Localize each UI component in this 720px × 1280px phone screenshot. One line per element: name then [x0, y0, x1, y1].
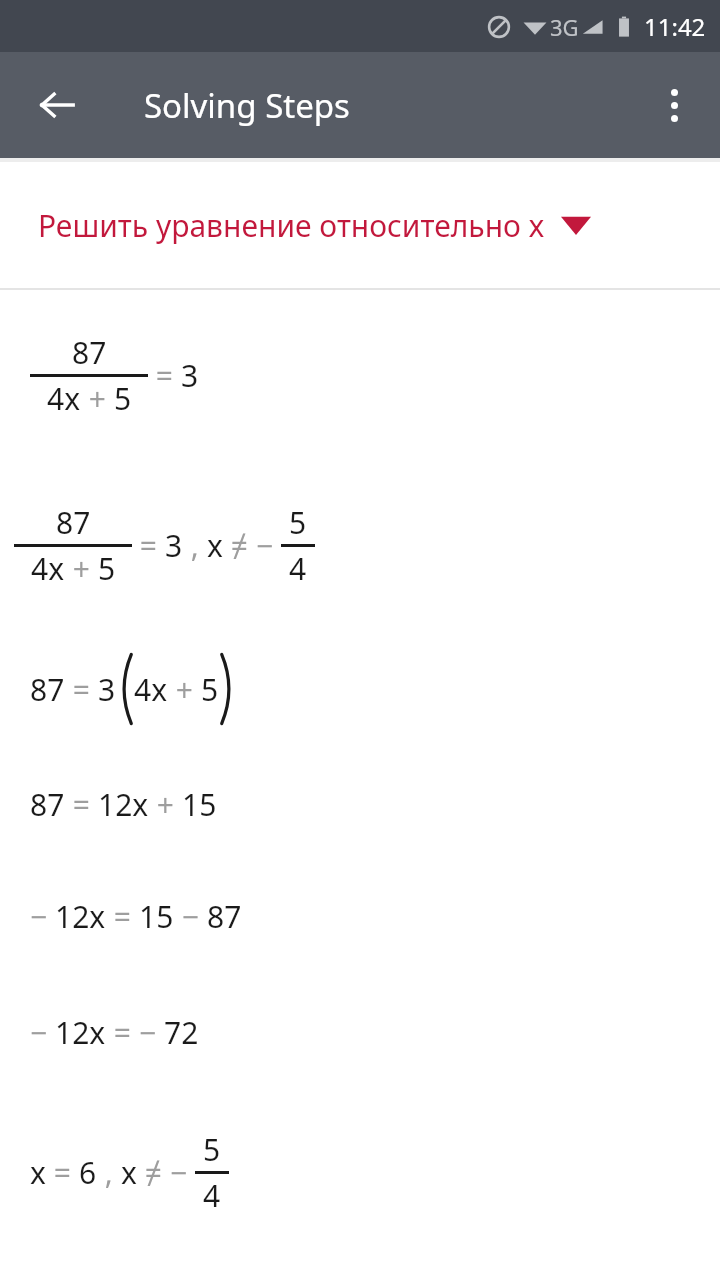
- staticText: =: [46, 1152, 79, 1193]
- staticText: Решить уравнение относительно х: [38, 205, 545, 246]
- staticText: 87: [72, 332, 107, 373]
- staticText: 87: [56, 502, 91, 543]
- button[interactable]: 87: [0, 748, 720, 860]
- staticText: 4x: [134, 669, 168, 710]
- staticText: =: [106, 1012, 139, 1053]
- button[interactable]: 87: [0, 290, 720, 460]
- staticText: 15: [139, 896, 174, 937]
- staticText: 6: [79, 1152, 97, 1193]
- staticText: −: [139, 1012, 164, 1053]
- staticText: 87: [30, 784, 65, 825]
- staticText: =: [148, 355, 181, 396]
- staticText: 5: [203, 1129, 221, 1170]
- staticText: 87: [30, 669, 65, 710]
- staticText: 4: [203, 1175, 221, 1216]
- staticText: x: [207, 525, 223, 566]
- staticText: =: [106, 896, 139, 937]
- button[interactable]: 87: [0, 630, 720, 748]
- staticText: −: [30, 1012, 55, 1053]
- staticText: 15: [182, 784, 217, 825]
- staticText: 3G: [550, 12, 579, 42]
- staticText: 12x: [55, 1012, 106, 1053]
- button[interactable]: Решить уравнение относительно х: [0, 162, 720, 288]
- staticText: ≠: [137, 1152, 170, 1193]
- staticText: ≠: [223, 525, 256, 566]
- staticText: 4: [289, 548, 307, 589]
- button[interactable]: x: [0, 1092, 720, 1252]
- staticText: 5: [114, 378, 132, 419]
- staticText: 3: [165, 525, 183, 566]
- staticText: =: [65, 669, 98, 710]
- staticText: =: [65, 784, 98, 825]
- staticText: 87: [207, 896, 242, 937]
- button[interactable]: −: [0, 860, 720, 972]
- staticText: 5: [289, 502, 307, 543]
- staticText: +: [168, 669, 201, 710]
- staticText: 72: [164, 1012, 199, 1053]
- staticText: Solving Steps: [144, 83, 350, 128]
- button[interactable]: 87: [0, 460, 720, 630]
- staticText: +: [81, 378, 114, 419]
- button[interactable]: −: [0, 972, 720, 1092]
- staticText: +: [65, 548, 98, 589]
- staticText: −: [256, 525, 281, 566]
- staticText: ,: [97, 1152, 121, 1193]
- staticText: 5: [98, 548, 116, 589]
- staticText: 3: [98, 669, 116, 710]
- staticText: x: [121, 1152, 137, 1193]
- staticText: −: [30, 896, 55, 937]
- staticText: ,: [183, 525, 207, 566]
- staticText: 12x: [55, 896, 106, 937]
- button[interactable]: Back: [18, 66, 96, 144]
- staticText: 4x: [47, 378, 81, 419]
- staticText: +: [149, 784, 182, 825]
- staticText: 12x: [98, 784, 149, 825]
- staticText: 4x: [31, 548, 65, 589]
- staticText: 11:42: [644, 10, 706, 43]
- staticText: 5: [201, 669, 219, 710]
- staticText: x: [30, 1152, 46, 1193]
- staticText: 3: [181, 355, 199, 396]
- staticText: −: [170, 1152, 195, 1193]
- button[interactable]: More options: [638, 69, 710, 141]
- staticText: =: [132, 525, 165, 566]
- staticText: −: [174, 896, 207, 937]
